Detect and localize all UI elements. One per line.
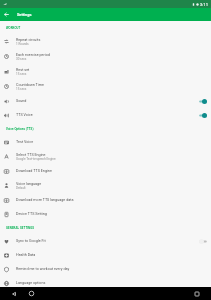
button[interactable]: Select TTS Engine — [0, 149, 211, 164]
staticText: Repeat circuits — [16, 38, 41, 42]
staticText: Test Voice — [16, 140, 34, 144]
staticText: WORKOUT — [6, 26, 21, 29]
staticText: Default — [16, 186, 26, 190]
staticText: 15 secs — [16, 87, 27, 91]
staticText: Health Data — [16, 253, 36, 257]
staticText: Device TTS Setting — [16, 212, 47, 216]
staticText: Download more TTS language data — [16, 198, 74, 202]
staticText: Sync to Google Fit — [16, 239, 46, 243]
button[interactable]: Home — [25, 287, 38, 300]
button[interactable]: Repeat circuits — [0, 34, 211, 49]
staticText: Sound — [16, 99, 27, 103]
button[interactable]: Voice language — [0, 178, 211, 193]
staticText: 30 secs — [16, 57, 27, 61]
staticText: Countdown Time — [16, 83, 44, 87]
button[interactable]: Sync to Google Fit — [0, 234, 211, 248]
button[interactable]: Device TTS Setting — [0, 207, 211, 221]
button[interactable]: Recent apps — [190, 287, 203, 300]
button[interactable]: Health Data — [0, 248, 211, 262]
staticText: Each exercise period — [16, 53, 50, 57]
staticText: 1 Rounds — [16, 42, 29, 46]
button[interactable]: Countdown Time — [0, 79, 211, 94]
staticText: Language options — [16, 281, 46, 285]
button[interactable]: Test Voice — [0, 135, 211, 149]
button[interactable]: TTS Voice — [0, 108, 211, 122]
staticText: 3:11 — [200, 2, 209, 7]
staticText: 15 secs — [16, 72, 27, 76]
staticText: Voice Options (TTS) — [6, 127, 34, 130]
staticText: Settings — [17, 12, 32, 17]
staticText: Google Text-to-speech Engine — [16, 157, 56, 161]
button[interactable]: Sound — [0, 94, 211, 108]
button[interactable]: Back — [0, 8, 13, 21]
button[interactable]: Download TTS Engine — [0, 164, 211, 178]
button[interactable]: Rest set — [0, 64, 211, 79]
button[interactable]: Each exercise period — [0, 49, 211, 64]
staticText: Voice language — [16, 182, 42, 186]
staticText: Remind me to workout every day — [16, 267, 70, 271]
button[interactable]: Remind me to workout every day — [0, 262, 211, 276]
staticText: Select TTS Engine — [16, 153, 46, 157]
button[interactable]: Download more TTS language data — [0, 193, 211, 207]
staticText: GENERAL SETTINGS — [6, 226, 35, 229]
staticText: Download TTS Engine — [16, 169, 52, 173]
staticText: Rest set — [16, 68, 30, 72]
button[interactable]: Language options — [0, 276, 211, 290]
button[interactable]: Back — [7, 287, 20, 300]
staticText: TTS Voice — [16, 113, 33, 117]
